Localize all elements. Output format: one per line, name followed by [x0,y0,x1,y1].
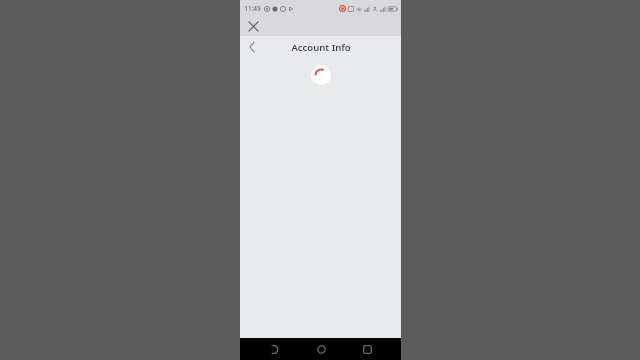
staticText: 11:49 [244,4,261,13]
button[interactable]: Close [245,18,261,34]
button[interactable]: Back [261,338,287,360]
staticText: Account Info [291,41,351,54]
button[interactable]: Recent apps [354,338,380,360]
button[interactable]: Home [308,338,334,360]
button[interactable]: Back [244,39,260,55]
